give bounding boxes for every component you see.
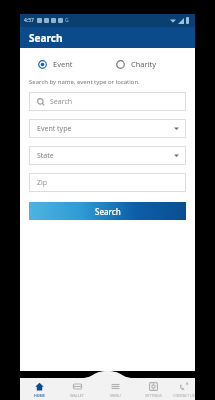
button[interactable]: Event type <box>29 119 186 138</box>
staticText: Search <box>50 97 73 107</box>
button[interactable]: Zip <box>29 173 186 192</box>
button[interactable]: Charity <box>107 57 186 71</box>
staticText: MENU <box>110 393 121 398</box>
button[interactable]: SETTINGS <box>134 382 172 398</box>
button[interactable]: Event <box>29 57 107 71</box>
staticText: SETTINGS <box>145 393 162 398</box>
staticText: Event type <box>37 124 72 134</box>
staticText: WALLET <box>70 393 84 398</box>
staticText: Charity <box>131 59 157 69</box>
staticText: CONTACT US <box>173 393 195 398</box>
button[interactable]: WALLET <box>58 382 96 398</box>
staticText: HOME <box>34 393 45 398</box>
staticText: Search <box>95 206 121 217</box>
staticText: Search <box>29 31 63 45</box>
button[interactable]: MENU <box>96 382 134 398</box>
button[interactable]: State <box>29 146 186 165</box>
button[interactable]: Search <box>29 92 186 111</box>
staticText: Zip <box>37 178 48 188</box>
staticText: G <box>65 17 69 24</box>
button[interactable]: HOME <box>20 382 58 398</box>
button[interactable]: Search <box>29 202 186 220</box>
button[interactable]: CONTACT US <box>172 382 195 398</box>
staticText: 4:57 <box>24 17 34 24</box>
staticText: Event <box>53 59 73 69</box>
staticText: State <box>37 151 54 161</box>
staticText: Search by name, event type or location. <box>29 78 140 86</box>
